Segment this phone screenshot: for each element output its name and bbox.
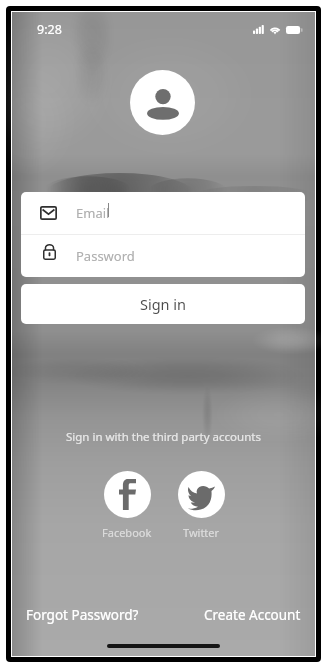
staticText: Email (76, 204, 110, 222)
button[interactable]: Facebook (102, 471, 152, 540)
button[interactable]: Password (21, 235, 305, 277)
button[interactable]: Email (21, 192, 305, 234)
staticText: Twitter (183, 525, 220, 540)
staticText: Facebook (102, 525, 152, 540)
button[interactable]: Sign in (21, 284, 305, 324)
button[interactable]: Create Account (204, 606, 301, 624)
staticText: Sign in with the third party accounts (66, 429, 261, 445)
staticText: Password (76, 247, 135, 265)
staticText: 9:28 (37, 21, 62, 38)
button[interactable]: Forgot Password? (26, 606, 139, 624)
button[interactable]: Twitter (178, 471, 225, 540)
staticText: Sign in (140, 294, 187, 314)
